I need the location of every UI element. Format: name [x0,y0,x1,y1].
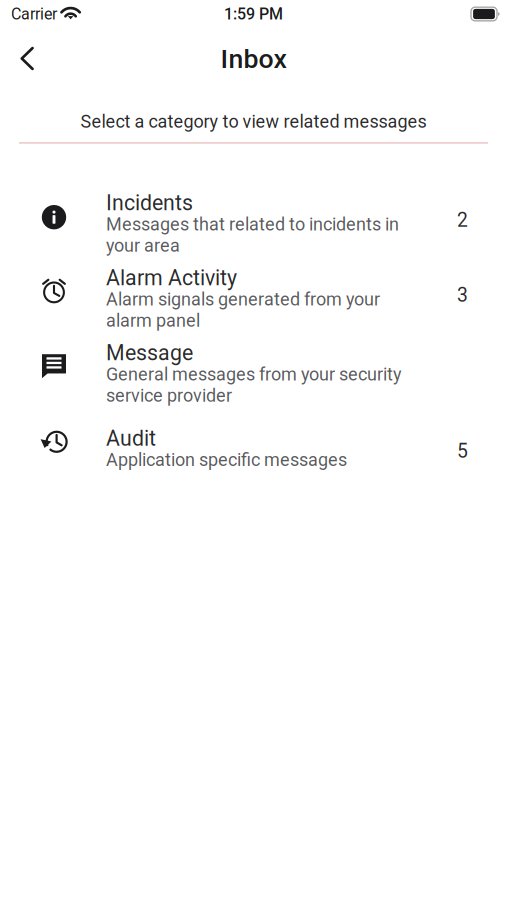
staticText: Inbox [220,43,286,75]
button[interactable]: Alarm Activity [0,261,507,336]
button[interactable]: Incidents [0,186,507,261]
staticText: Messages that related to incidents in yo… [106,214,399,256]
staticText: Alarm signals generated from your alarm … [106,289,380,331]
staticText: 2 [457,209,468,232]
button[interactable]: Audit [0,411,507,486]
staticText: Application specific messages [106,449,347,470]
staticText: 5 [457,440,468,463]
staticText: Carrier [11,5,57,23]
button[interactable]: Back [0,37,51,80]
staticText: Incidents [106,190,193,215]
staticText: Select a category to view related messag… [80,111,426,132]
staticText: General messages from your security serv… [106,364,402,406]
staticText: 3 [457,284,468,307]
button[interactable]: Message [0,336,507,411]
staticText: Alarm Activity [106,265,237,290]
staticText: Audit [106,426,156,451]
staticText: 1:59 PM [224,5,283,23]
staticText: Message [106,340,193,365]
